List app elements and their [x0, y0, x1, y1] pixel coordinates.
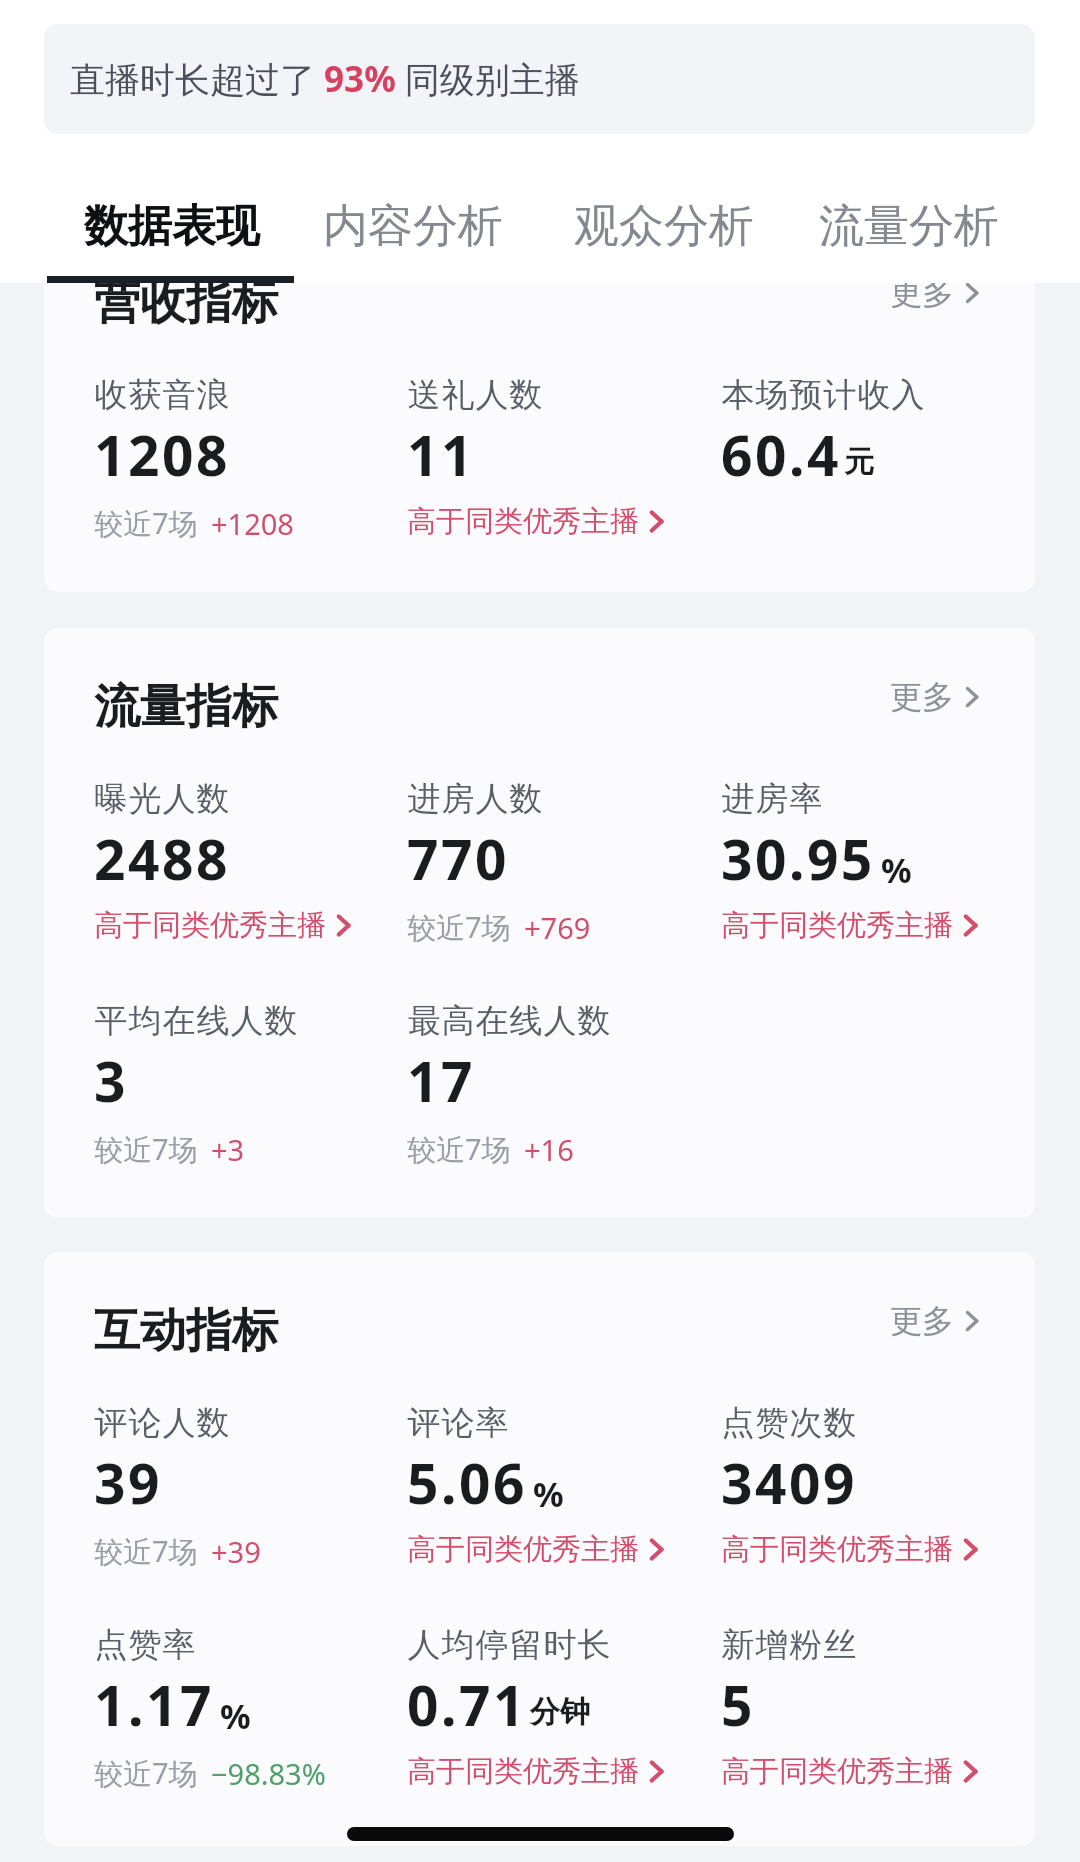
- staticText: 770: [407, 821, 509, 896]
- staticText: 高于同类优秀主播: [407, 1753, 639, 1790]
- staticText: 较近7场: [407, 1129, 511, 1169]
- staticText: +769: [524, 908, 591, 947]
- staticText: +16: [524, 1130, 574, 1169]
- staticText: 收获音浪: [94, 374, 230, 416]
- staticText: 3409: [721, 1445, 857, 1520]
- staticText: 新增粉丝: [721, 1624, 857, 1666]
- staticText: 2488: [94, 821, 230, 896]
- staticText: 平均在线人数: [94, 1000, 298, 1042]
- button[interactable]: 点赞次数: [721, 1402, 979, 1568]
- staticText: 较近7场: [94, 1753, 198, 1793]
- staticText: 高于同类优秀主播: [94, 907, 326, 944]
- button[interactable]: 评论人数: [94, 1402, 261, 1571]
- button[interactable]: 高于同类优秀主播: [94, 907, 352, 944]
- button[interactable]: 本场预计收入: [721, 374, 925, 503]
- staticText: 评论率: [407, 1402, 509, 1444]
- button[interactable]: 观众分析: [574, 198, 754, 255]
- button[interactable]: 新增粉丝: [721, 1624, 979, 1790]
- button[interactable]: 高于同类优秀主播: [407, 1753, 665, 1790]
- staticText: 点赞率: [94, 1624, 196, 1666]
- button[interactable]: 查看更多: [890, 283, 980, 313]
- button[interactable]: 流量分析: [819, 198, 999, 255]
- button[interactable]: 进房率: [721, 778, 979, 944]
- button[interactable]: 高于同类优秀主播: [721, 1531, 979, 1568]
- staticText: 高于同类优秀主播: [721, 1531, 953, 1568]
- staticText: 0.71: [407, 1667, 527, 1742]
- button[interactable]: 曝光人数: [94, 778, 352, 944]
- button[interactable]: 内容分析: [323, 198, 503, 255]
- staticText: 直播时长超过了 93% 同级别主播: [70, 55, 580, 103]
- button[interactable]: 高于同类优秀主播: [721, 907, 979, 944]
- staticText: 5.06: [407, 1445, 527, 1520]
- staticText: 1208: [94, 417, 230, 492]
- staticText: 流量指标: [94, 678, 278, 736]
- staticText: 11: [407, 417, 475, 492]
- staticText: 进房率: [721, 778, 823, 820]
- staticText: −98.83%: [211, 1754, 326, 1793]
- staticText: 评论人数: [94, 1402, 230, 1444]
- staticText: 营收指标: [94, 283, 278, 332]
- staticText: 较近7场: [94, 1531, 198, 1571]
- button[interactable]: 高于同类优秀主播: [407, 503, 665, 540]
- staticText: %: [881, 847, 912, 893]
- button[interactable]: 人均停留时长: [407, 1624, 665, 1790]
- staticText: +1208: [211, 504, 294, 543]
- staticText: 观众分析: [574, 198, 754, 255]
- button[interactable]: 高于同类优秀主播: [407, 1531, 665, 1568]
- staticText: 更多: [890, 1301, 954, 1341]
- staticText: 分钟: [530, 1693, 590, 1731]
- staticText: 曝光人数: [94, 778, 230, 820]
- staticText: 进房人数: [407, 778, 543, 820]
- staticText: +3: [211, 1130, 245, 1169]
- button[interactable]: 数据表现: [84, 199, 260, 254]
- staticText: %: [220, 1693, 251, 1739]
- staticText: +39: [211, 1532, 261, 1571]
- button[interactable]: 点赞率: [94, 1624, 326, 1793]
- staticText: 高于同类优秀主播: [721, 1753, 953, 1790]
- staticText: 高于同类优秀主播: [721, 907, 953, 944]
- staticText: 17: [407, 1043, 475, 1118]
- staticText: 3: [94, 1043, 128, 1118]
- button[interactable]: 送礼人数: [407, 374, 665, 540]
- button[interactable]: 进房人数: [407, 778, 591, 947]
- staticText: 高于同类优秀主播: [407, 503, 639, 540]
- staticText: 较近7场: [94, 1129, 198, 1169]
- button[interactable]: 高于同类优秀主播: [721, 1753, 979, 1790]
- staticText: 最高在线人数: [407, 1000, 611, 1042]
- staticText: 互动指标: [94, 1302, 278, 1360]
- staticText: 30.95: [721, 821, 875, 896]
- staticText: 数据表现: [84, 199, 260, 254]
- staticText: 点赞次数: [721, 1402, 857, 1444]
- staticText: 39: [94, 1445, 162, 1520]
- staticText: 较近7场: [94, 503, 198, 543]
- button[interactable]: 查看更多: [890, 677, 980, 717]
- staticText: 高于同类优秀主播: [407, 1531, 639, 1568]
- staticText: 5: [721, 1667, 755, 1742]
- staticText: 更多: [890, 283, 954, 313]
- staticText: 内容分析: [323, 198, 503, 255]
- staticText: 流量分析: [819, 198, 999, 255]
- staticText: 更多: [890, 677, 954, 717]
- button[interactable]: 最高在线人数: [407, 1000, 611, 1169]
- staticText: 本场预计收入: [721, 374, 925, 416]
- button[interactable]: 平均在线人数: [94, 1000, 298, 1169]
- button[interactable]: 收获音浪: [94, 374, 294, 543]
- staticText: 送礼人数: [407, 374, 543, 416]
- button[interactable]: 直播时长超过了 93% 同级别主播: [44, 24, 1035, 134]
- button[interactable]: 评论率: [407, 1402, 665, 1568]
- staticText: 人均停留时长: [407, 1624, 611, 1666]
- button[interactable]: 查看更多: [890, 1301, 980, 1341]
- staticText: 较近7场: [407, 907, 511, 947]
- staticText: 60.4: [721, 417, 841, 492]
- staticText: 元: [844, 443, 874, 481]
- staticText: %: [533, 1471, 564, 1517]
- staticText: 1.17: [94, 1667, 214, 1742]
